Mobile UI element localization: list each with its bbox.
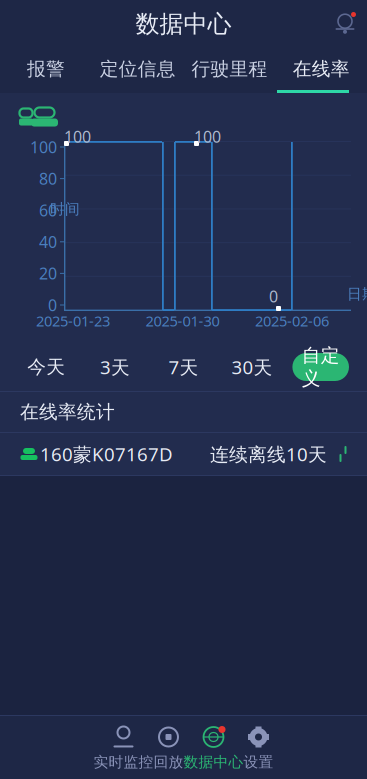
button[interactable]: 数据中心 bbox=[183, 716, 243, 774]
staticText: 2025-01-30 bbox=[145, 311, 219, 330]
staticText: 80 bbox=[39, 168, 57, 189]
button[interactable]: 今天 bbox=[12, 353, 81, 381]
staticText: 设置 bbox=[243, 753, 273, 771]
button[interactable]: 回放 bbox=[153, 716, 183, 774]
button[interactable]: 自定义 bbox=[286, 353, 355, 381]
staticText: 7天 bbox=[168, 355, 198, 379]
staticText: 100 bbox=[194, 126, 221, 147]
button[interactable]: 通知 bbox=[323, 2, 367, 46]
button[interactable]: 30天 bbox=[218, 353, 286, 381]
button[interactable]: 实时监控 bbox=[93, 716, 153, 774]
staticText: 时间 bbox=[50, 200, 80, 218]
staticText: 2025-02-06 bbox=[255, 311, 329, 330]
staticText: 实时监控 bbox=[93, 753, 153, 771]
staticText: 2025-01-23 bbox=[36, 311, 110, 330]
staticText: 20 bbox=[39, 263, 57, 284]
staticText: 连续离线10天 bbox=[210, 442, 327, 466]
staticText: 100 bbox=[64, 126, 91, 147]
button[interactable]: 定位信息 bbox=[92, 48, 184, 90]
staticText: 100 bbox=[30, 136, 57, 158]
button[interactable]: 在线率 bbox=[275, 48, 367, 90]
staticText: 30天 bbox=[232, 355, 273, 379]
staticText: 回放 bbox=[153, 753, 183, 771]
button[interactable]: 160蒙K07167D bbox=[0, 433, 367, 475]
staticText: 40 bbox=[39, 231, 57, 252]
staticText: 在线率 bbox=[293, 57, 350, 80]
staticText: 行驶里程 bbox=[191, 57, 267, 80]
button[interactable]: 7天 bbox=[149, 353, 218, 381]
staticText: 自定义 bbox=[302, 344, 340, 390]
staticText: 定位信息 bbox=[100, 57, 176, 80]
staticText: 3天 bbox=[100, 355, 130, 379]
staticText: 0 bbox=[48, 294, 57, 316]
button[interactable]: 设置 bbox=[243, 716, 273, 774]
staticText: 数据中心 bbox=[183, 753, 243, 771]
staticText: 今天 bbox=[27, 355, 65, 378]
staticText: 0 bbox=[269, 286, 278, 307]
staticText: 60 bbox=[39, 200, 57, 221]
button[interactable]: 行驶里程 bbox=[183, 48, 275, 90]
staticText: 报警 bbox=[27, 57, 65, 80]
button[interactable]: 报警 bbox=[0, 48, 92, 90]
button[interactable]: 3天 bbox=[81, 353, 149, 381]
staticText: 160蒙K07167D bbox=[40, 442, 173, 466]
staticText: 在线率统计 bbox=[20, 400, 115, 423]
staticText: 数据中心 bbox=[135, 9, 231, 39]
staticText: 日期 bbox=[347, 285, 367, 303]
